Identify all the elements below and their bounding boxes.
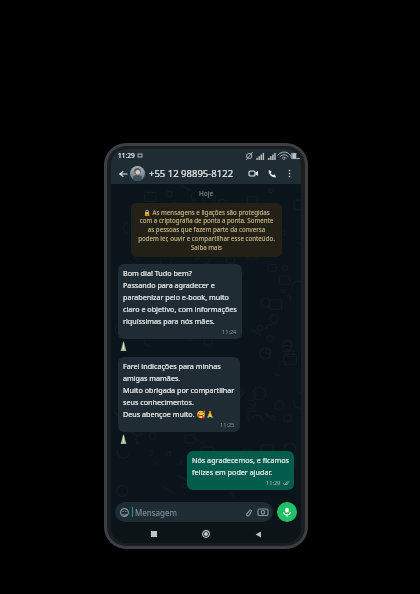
button[interactable]: Video call [245,165,261,181]
button[interactable]: Back [116,167,129,180]
button[interactable]: Mensagem [115,502,273,522]
staticText: felizes em poder ajudar. [192,467,273,477]
staticText: parabenizar pelo e-book, muito [123,292,229,302]
staticText: seus conhecimentos. [123,397,194,407]
button[interactable]: 🔒 As mensagens e ligações são protegidas… [131,203,282,257]
staticText: Mensagem [135,507,177,518]
staticText: +55 12 98895-8122 [149,167,234,180]
staticText: 🔒 As mensagens e ligações são protegidas… [137,208,276,252]
button[interactable]: Back [249,525,267,543]
button[interactable]: Home [197,525,215,543]
button[interactable] [130,166,145,181]
button[interactable]: Farei indicações para minhas [118,357,240,432]
staticText: 11:29 [118,151,135,160]
staticText: Farei indicações para minhas [123,361,221,371]
staticText: Hoje [199,189,214,198]
other: Attach [244,508,253,517]
button[interactable]: Call [264,165,280,181]
staticText: Bom dia! Tudo bem? [123,268,192,278]
staticText: 11:29 [266,479,281,487]
staticText: amigas mamães. [123,373,181,383]
staticText: 11:24 [222,328,237,336]
button[interactable]: Recents [145,525,163,543]
button[interactable]: Voice message [277,502,297,522]
staticText: Passando para agradecer e [123,280,215,290]
staticText: 11:25 [220,421,235,429]
staticText: riquíssimas para nós mães. [123,316,215,326]
other: Camera [258,507,268,517]
staticText: Deus abençoe muito. 🥰🙏 [123,409,215,419]
button[interactable]: Nós agradecemos, e ficamos [187,451,294,490]
button[interactable]: Bom dia! Tudo bem? [118,264,242,339]
staticText: Muito obrigada por compartilhar [123,385,235,395]
staticText: Nós agradecemos, e ficamos [192,455,289,465]
button[interactable]: More options [282,166,296,180]
button[interactable]: +55 12 98895-8122 [149,167,245,180]
staticText: claro e objetivo, com informações [123,304,237,314]
